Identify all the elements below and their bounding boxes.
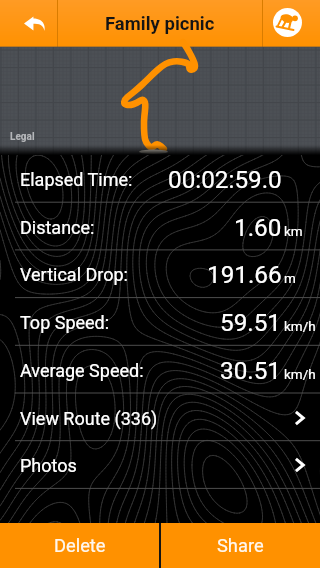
button[interactable]: Share	[161, 523, 320, 568]
staticText: m	[284, 270, 296, 286]
staticText: Delete	[54, 535, 106, 556]
staticText: Elapsed Time:	[20, 169, 133, 190]
button[interactable]: Elapsed Time:	[0, 155, 320, 203]
staticText: 30.51	[220, 356, 282, 384]
staticText: Share	[217, 535, 264, 556]
staticText: Legal	[10, 131, 35, 143]
staticText: 00:02:59.0	[168, 165, 282, 193]
button[interactable]: Vertical Drop:	[0, 250, 320, 298]
button[interactable]: Delete	[0, 523, 159, 568]
button[interactable]: Family picnic	[58, 0, 262, 47]
staticText: View Route (336)	[20, 408, 158, 429]
staticText: 1.60	[234, 213, 282, 241]
button[interactable]: Average Speed:	[0, 346, 320, 394]
staticText: Top Speed:	[20, 312, 110, 333]
button[interactable]: Photos	[0, 441, 320, 489]
button[interactable]: View Route (336)	[0, 394, 320, 442]
staticText: Distance:	[20, 217, 95, 238]
staticText: 59.51	[220, 308, 282, 336]
staticText: km/h	[284, 366, 316, 382]
staticText: km/h	[284, 318, 316, 334]
staticText: 191.66	[207, 260, 282, 288]
staticText: Average Speed:	[20, 360, 144, 381]
staticText: Photos	[20, 455, 77, 476]
staticText: Vertical Drop:	[20, 264, 128, 285]
staticText: km	[284, 223, 303, 239]
button[interactable]: Distance:	[0, 203, 320, 251]
staticText: Family picnic	[105, 13, 215, 35]
button[interactable]: Activity type	[263, 0, 320, 47]
button[interactable]: Top Speed:	[0, 298, 320, 346]
button[interactable]: Back	[0, 0, 57, 47]
